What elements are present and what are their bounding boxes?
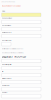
staticText: Apartment, suite (1, 63, 11, 65)
button[interactable] (1, 59, 41, 63)
button[interactable] (1, 80, 41, 84)
staticText: Please fix the errors below (1, 5, 20, 7)
staticText: Country (1, 92, 7, 93)
staticText: Secure checkout (1, 1, 14, 3)
button[interactable] (1, 27, 41, 31)
button[interactable] (1, 73, 41, 77)
staticText: City (1, 70, 3, 72)
staticText: State / Province (1, 77, 11, 79)
staticText: Postal code (1, 85, 9, 86)
button[interactable] (1, 13, 41, 17)
button[interactable] (1, 94, 41, 98)
staticText: Street address (1, 56, 12, 58)
staticText: Name on card (1, 31, 11, 33)
staticText: Phone number (1, 17, 12, 19)
button[interactable] (1, 42, 11, 46)
button[interactable] (1, 20, 41, 24)
staticText: DELIVERY ADDRESS (1, 55, 25, 58)
button[interactable] (1, 87, 41, 91)
staticText: Email (1, 10, 4, 12)
staticText: Card number (1, 24, 11, 26)
staticText: We will email a receipt to this address (1, 48, 23, 50)
button[interactable] (1, 66, 41, 70)
staticText: Security code (1, 40, 11, 41)
staticText: once the payment has completed. (1, 52, 23, 54)
button[interactable] (1, 34, 41, 38)
